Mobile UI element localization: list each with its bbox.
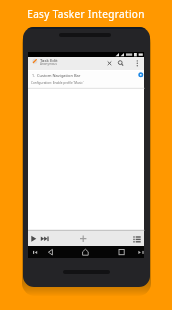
button[interactable] — [81, 247, 90, 258]
button[interactable] — [47, 247, 55, 258]
button[interactable] — [116, 58, 125, 67]
button[interactable] — [40, 232, 50, 245]
button[interactable] — [137, 247, 145, 258]
button[interactable] — [77, 232, 89, 245]
button[interactable] — [133, 58, 142, 67]
button[interactable] — [118, 247, 126, 258]
staticText: 1. — [32, 73, 36, 78]
staticText: Configuration: Enable profile 'Music' — [31, 81, 84, 85]
button[interactable] — [131, 232, 141, 245]
button[interactable] — [28, 71, 144, 89]
button[interactable] — [105, 58, 114, 67]
button[interactable] — [31, 247, 39, 258]
staticText: Easy Tasker Integration — [0, 7, 172, 21]
button[interactable] — [30, 232, 39, 245]
staticText: Task Edit — [40, 58, 58, 64]
staticText: Anonymous — [40, 62, 57, 66]
staticText: Custom Navigation Bar — [37, 73, 81, 78]
